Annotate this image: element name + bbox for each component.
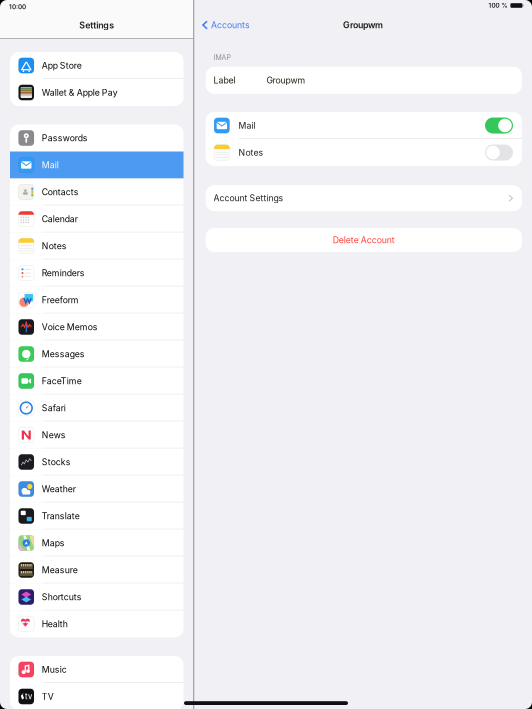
- staticText: Voice Memos: [42, 322, 98, 332]
- button[interactable]: Safari: [10, 394, 183, 421]
- staticText: Notes: [42, 241, 67, 251]
- staticText: tv: [25, 692, 32, 701]
- staticText: Maps: [42, 538, 65, 548]
- staticText: Notes: [239, 147, 264, 158]
- button[interactable]: Measure: [10, 556, 183, 583]
- button[interactable]: Contacts: [10, 178, 183, 205]
- button[interactable]: App Store: [10, 52, 183, 79]
- staticText: FaceTime: [42, 376, 82, 386]
- button[interactable]: FaceTime: [10, 367, 183, 394]
- staticText: Measure: [42, 565, 78, 575]
- staticText: Accounts: [211, 20, 250, 30]
- staticText: 10:00: [9, 3, 26, 11]
- staticText: Delete Account: [333, 235, 395, 245]
- button[interactable]: Notes: [10, 232, 183, 259]
- button[interactable]: Health: [10, 610, 183, 637]
- staticText: Contacts: [42, 187, 79, 197]
- button[interactable]: Stocks: [10, 448, 183, 475]
- staticText: Safari: [42, 403, 66, 413]
- staticText: Groupwm: [343, 20, 383, 30]
- staticText: Wallet & Apple Pay: [42, 87, 118, 98]
- staticText: Weather: [42, 484, 76, 494]
- staticText: Messages: [42, 349, 85, 359]
- staticText: Translate: [42, 511, 80, 521]
- button[interactable]: Delete Account: [206, 228, 522, 252]
- button[interactable]: Wallet & Apple Pay: [10, 79, 183, 106]
- staticText: IMAP: [214, 53, 231, 62]
- staticText: 100 %: [488, 2, 507, 9]
- button[interactable]: Weather: [10, 475, 183, 502]
- staticText: App Store: [42, 60, 82, 71]
- staticText: TV: [42, 691, 54, 702]
- button[interactable]: News: [10, 421, 183, 448]
- staticText: Groupwm: [267, 75, 306, 86]
- button[interactable]: Voice Memos: [10, 313, 183, 340]
- button[interactable]: Calendar: [10, 205, 183, 232]
- staticText: Settings: [79, 20, 114, 30]
- staticText: Reminders: [42, 268, 85, 278]
- staticText: Shortcuts: [42, 592, 82, 602]
- staticText: Mail: [42, 160, 59, 170]
- button[interactable]: tv: [10, 683, 183, 709]
- button[interactable]: Music: [10, 656, 183, 683]
- staticText: Mail: [239, 120, 256, 131]
- button[interactable]: Account Settings: [206, 185, 522, 211]
- staticText: Calendar: [42, 214, 78, 224]
- button[interactable]: Messages: [10, 340, 183, 367]
- staticText: Freeform: [42, 295, 79, 305]
- button[interactable]: Shortcuts: [10, 583, 183, 610]
- staticText: Account Settings: [214, 193, 284, 203]
- button[interactable]: Notes: [485, 144, 513, 160]
- button[interactable]: Translate: [10, 502, 183, 529]
- button[interactable]: Maps: [10, 529, 183, 556]
- button[interactable]: Mail: [485, 117, 513, 133]
- staticText: News: [42, 430, 66, 440]
- button[interactable]: Reminders: [10, 259, 183, 286]
- staticText: Label: [214, 75, 236, 86]
- staticText: Music: [42, 664, 67, 675]
- button[interactable]: Mail: [10, 151, 183, 178]
- staticText: Stocks: [42, 457, 71, 467]
- button[interactable]: Freeform: [10, 286, 183, 313]
- button[interactable]: Passwords: [10, 124, 183, 151]
- button[interactable]: Accounts: [202, 14, 256, 36]
- staticText: Passwords: [42, 133, 88, 143]
- staticText: Health: [42, 619, 68, 629]
